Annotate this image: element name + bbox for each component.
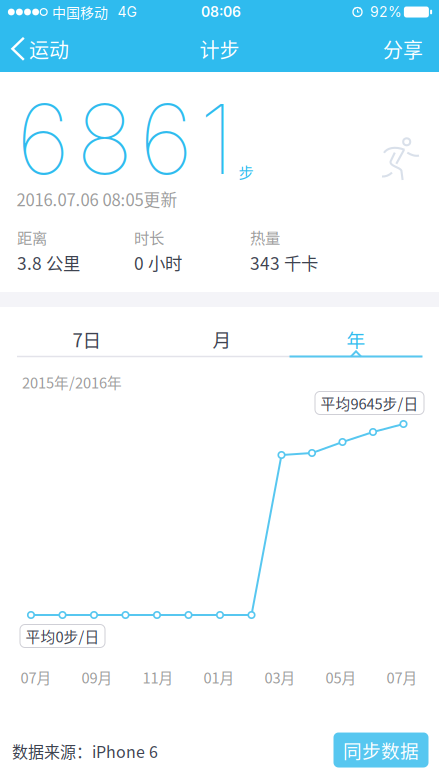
staticText: 同步数据 (343, 736, 419, 763)
staticText: 05月 (325, 666, 356, 688)
button[interactable]: 运动 (0, 27, 81, 71)
button[interactable]: 7日 (19, 320, 154, 357)
staticText: 343 千卡 (250, 250, 318, 275)
button[interactable]: 年 (288, 320, 423, 357)
staticText: 平均0步/日 (25, 625, 99, 647)
staticText: 6861 (16, 81, 234, 197)
staticText: 数据来源：iPhone 6 (12, 739, 158, 763)
staticText: 92% (370, 3, 402, 20)
staticText: 08:06 (201, 3, 241, 20)
staticText: 热量 (250, 226, 280, 248)
staticText: 平均9645步/日 (320, 392, 418, 414)
staticText: 4G (117, 3, 136, 20)
staticText: 11月 (142, 666, 173, 688)
staticText: 年 (346, 325, 365, 352)
staticText: 07月 (386, 666, 417, 688)
staticText: 0 小时 (134, 250, 182, 275)
staticText: 07月 (20, 666, 51, 688)
staticText: 3.8 公里 (17, 250, 80, 275)
staticText: 计步 (199, 34, 239, 63)
staticText: 距离 (17, 226, 47, 248)
staticText: 2015年/2016年 (22, 371, 122, 393)
staticText: 分享 (383, 34, 423, 63)
staticText: 2016.07.06 08:05更新 (16, 187, 177, 211)
staticText: 步 (238, 160, 253, 183)
staticText: 中国移动 (52, 2, 108, 22)
staticText: 月 (212, 325, 231, 352)
button[interactable]: 分享 (367, 27, 439, 71)
staticText: 运动 (29, 34, 69, 63)
staticText: 7日 (72, 325, 101, 352)
staticText: 01月 (203, 666, 234, 688)
staticText: 03月 (264, 666, 295, 688)
staticText: 09月 (81, 666, 112, 688)
button[interactable]: 月 (154, 320, 289, 357)
staticText: 时长 (134, 226, 164, 248)
button[interactable]: 同步数据 (333, 732, 428, 767)
